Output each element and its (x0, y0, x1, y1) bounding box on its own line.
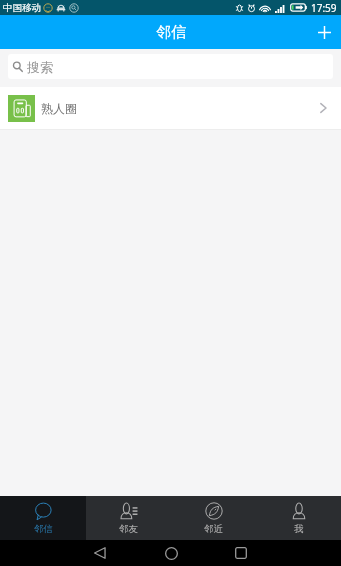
staticText: 搜索 (27, 59, 53, 75)
button[interactable]: 邻信 (0, 496, 86, 540)
staticText: 我 (294, 523, 304, 535)
button[interactable]: 熟人圈 (0, 87, 341, 129)
button[interactable]: Home (158, 540, 184, 566)
button[interactable]: Back (87, 540, 113, 566)
staticText: 17:59 (311, 1, 337, 15)
staticText: 中国移动 (3, 2, 41, 14)
staticText: 邻近 (204, 523, 223, 535)
button[interactable]: 邻近 (171, 496, 256, 540)
button[interactable]: Add (307, 15, 341, 49)
staticText: 邻信 (34, 523, 53, 535)
button[interactable]: 邻友 (86, 496, 171, 540)
staticText: 熟人圈 (41, 101, 77, 116)
staticText: 邻友 (119, 523, 138, 535)
button[interactable]: 我 (256, 496, 341, 540)
button[interactable]: 搜索 (8, 54, 333, 79)
button[interactable]: Recents (228, 540, 254, 566)
staticText: 邻信 (156, 23, 186, 42)
